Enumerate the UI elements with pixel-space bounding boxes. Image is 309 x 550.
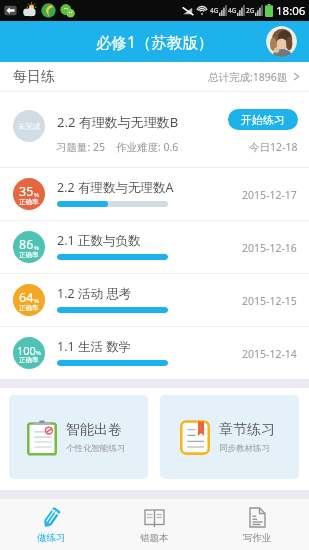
staticText: 习题量: 25	[56, 140, 106, 154]
staticText: 1.1 生活 数学	[57, 338, 132, 355]
button[interactable]: 错题本	[103, 499, 206, 550]
staticText: 2015-12-16	[242, 241, 297, 255]
staticText: 智能出卷	[66, 421, 122, 439]
staticText: 2015-12-14	[242, 347, 297, 361]
staticText: %	[34, 244, 39, 252]
staticText: 未完成	[18, 122, 41, 131]
staticText: 开始练习	[241, 113, 285, 127]
button[interactable]: 35	[0, 168, 309, 220]
staticText: 正确率	[19, 198, 39, 206]
staticText: 86	[19, 236, 34, 253]
staticText: 错题本	[140, 532, 169, 544]
staticText: 2015-12-15	[242, 294, 297, 308]
staticText: 正确率	[19, 356, 39, 364]
staticText: 正确率	[19, 251, 39, 259]
staticText: 章节练习	[219, 421, 275, 439]
staticText: 2015-12-17	[242, 188, 297, 202]
staticText: 写作业	[243, 532, 272, 544]
staticText: %	[34, 191, 39, 199]
button[interactable]: 86	[0, 221, 309, 273]
button[interactable]: 每日练	[0, 62, 309, 91]
staticText: 作业难度: 0.6	[116, 140, 179, 154]
staticText: 2.2 有理数与无理数B	[57, 113, 179, 131]
staticText: 个性化智能练习	[66, 443, 126, 454]
staticText: 2.1 正数与负数	[57, 232, 141, 249]
button[interactable]: 写作业	[206, 499, 309, 550]
staticText: 1.2 活动 思考	[57, 285, 132, 302]
staticText: 2G	[246, 6, 255, 15]
staticText: 4G	[228, 6, 237, 15]
button[interactable]: 做练习	[0, 499, 103, 550]
staticText: 必修1（苏教版）	[96, 31, 214, 52]
staticText: 今日12-18	[249, 140, 298, 154]
staticText: 64	[19, 289, 34, 306]
staticText: 同步教材练习	[219, 443, 270, 454]
staticText: 100	[17, 343, 36, 358]
button[interactable]: 智能出卷	[9, 395, 148, 479]
staticText: 总计完成:1896题	[208, 70, 288, 84]
staticText: %	[34, 297, 39, 305]
staticText: 正确率	[19, 304, 39, 312]
button[interactable]: 100	[0, 327, 309, 379]
button[interactable]: 64	[0, 274, 309, 326]
staticText: 每日练	[13, 68, 55, 86]
button[interactable]: 未完成	[0, 92, 309, 167]
button[interactable]: 开始练习	[228, 109, 298, 130]
staticText: 做练习	[37, 532, 66, 544]
staticText: 2.2 有理数与无理数A	[57, 179, 174, 196]
staticText: 4G	[210, 6, 219, 15]
staticText: %	[36, 349, 41, 357]
button[interactable]: 章节练习	[160, 395, 299, 479]
button[interactable]: Profile	[266, 26, 297, 57]
staticText: 18:06	[276, 3, 306, 19]
staticText: 35	[19, 183, 34, 200]
